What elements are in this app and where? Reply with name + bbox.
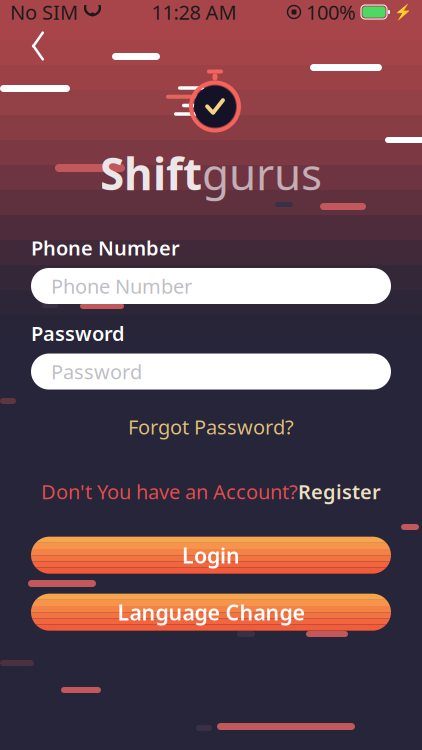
staticText: 100%	[306, 0, 356, 25]
staticText: Don't You have an Account?	[41, 478, 298, 505]
button[interactable]: Back	[16, 24, 60, 68]
staticText: Language Change	[117, 598, 304, 626]
staticText: Password	[31, 320, 125, 347]
button[interactable]: Phone Number	[31, 268, 391, 304]
staticText: gurus	[202, 144, 322, 202]
staticText: Shift	[100, 144, 202, 202]
button[interactable]: Don't You have an Account?	[41, 474, 381, 509]
button[interactable]: Password	[31, 353, 391, 389]
staticText: 11:28 AM	[151, 0, 236, 25]
staticText: Phone Number	[51, 273, 192, 299]
button[interactable]: Language Change	[31, 594, 391, 631]
button[interactable]: Forgot Password?	[116, 409, 306, 444]
staticText: Password	[51, 358, 142, 385]
staticText: Login	[182, 541, 240, 569]
staticText: Forgot Password?	[128, 413, 294, 440]
staticText: ⚡	[394, 4, 412, 20]
button[interactable]: Login	[31, 537, 391, 574]
staticText: Register	[298, 478, 381, 505]
staticText: Phone Number	[31, 234, 180, 261]
staticText: No SIM	[10, 0, 78, 25]
